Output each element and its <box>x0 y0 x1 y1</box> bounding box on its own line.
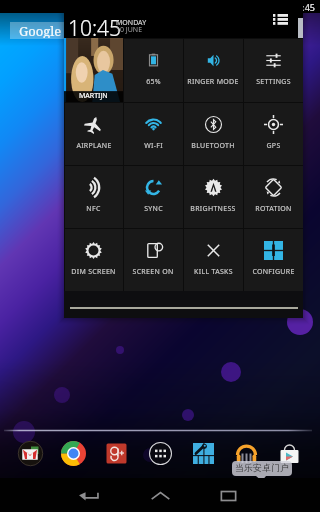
button[interactable]: Google Plus <box>99 436 133 470</box>
button[interactable]: Notifications <box>267 10 293 30</box>
button[interactable]: Recent apps <box>206 480 250 512</box>
button[interactable]: Close panel <box>64 291 303 318</box>
staticText: SETTINGS <box>256 77 291 87</box>
staticText: Google <box>19 22 62 38</box>
button[interactable]: SYNC <box>123 165 183 228</box>
button[interactable]: Gmail <box>13 436 47 470</box>
button[interactable]: WI-FI <box>123 102 183 165</box>
button[interactable]: Home <box>138 480 182 512</box>
button[interactable]: DIM SCREEN <box>64 228 123 291</box>
button[interactable]: BRIGHTNESS <box>183 165 243 228</box>
staticText: 65% <box>146 77 161 87</box>
staticText: a.d.cn <box>215 485 282 512</box>
staticText: NFC <box>86 204 101 214</box>
staticText: MONDAY <box>116 18 147 28</box>
staticText: MARTIJN <box>79 91 108 101</box>
button[interactable]: BLUETOOTH <box>183 102 243 165</box>
button[interactable]: Play Store <box>272 436 306 470</box>
button[interactable]: GPS <box>243 102 303 165</box>
staticText: SCREEN ON <box>132 267 174 277</box>
staticText: DIM SCREEN <box>71 267 116 277</box>
staticText: AIRPLANE <box>76 141 112 151</box>
button[interactable]: KILL TASKS <box>183 228 243 291</box>
button[interactable]: SCREEN ON <box>123 228 183 291</box>
button[interactable]: ROTATION <box>243 165 303 228</box>
staticText: 当乐安卓门户 <box>235 462 289 473</box>
staticText: SYNC <box>144 204 163 214</box>
staticText: GPS <box>266 141 281 151</box>
button[interactable]: 65% <box>123 38 183 102</box>
staticText: ROTATION <box>255 204 292 214</box>
button[interactable]: Quick Settings <box>186 436 220 470</box>
staticText: 10 JUNE <box>116 25 143 35</box>
staticText: KILL TASKS <box>194 267 233 277</box>
button[interactable]: MARTIJN <box>64 38 123 102</box>
button[interactable]: RINGER MODE <box>183 38 243 102</box>
button[interactable]: Chrome <box>56 436 90 470</box>
staticText: 10:45 <box>292 1 316 13</box>
button[interactable]: Google <box>10 22 130 39</box>
button[interactable]: Apps <box>143 436 177 470</box>
staticText: BLUETOOTH <box>191 141 235 151</box>
button[interactable]: Play Music <box>229 436 263 470</box>
button[interactable]: Back <box>66 480 110 512</box>
button[interactable]: CONFIGURE <box>243 228 303 291</box>
staticText: 10:45 <box>68 14 122 43</box>
staticText: RINGER MODE <box>187 77 239 87</box>
button[interactable]: SETTINGS <box>243 38 303 102</box>
staticText: BRIGHTNESS <box>190 204 236 214</box>
staticText: WI-FI <box>144 141 163 151</box>
button[interactable]: AIRPLANE <box>64 102 123 165</box>
staticText: CONFIGURE <box>252 267 295 277</box>
button[interactable]: NFC <box>64 165 123 228</box>
